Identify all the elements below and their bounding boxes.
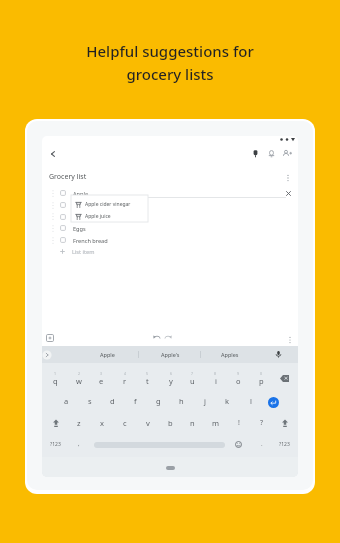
button[interactable]: Delete item <box>285 190 292 197</box>
staticText: Apple <box>73 190 89 198</box>
button[interactable]: More <box>286 336 294 344</box>
staticText: Grocery list <box>49 172 87 182</box>
button[interactable]: Enter <box>268 397 279 408</box>
button[interactable]: x <box>90 412 113 434</box>
button[interactable]: 0 <box>250 367 273 389</box>
button[interactable]: 3 <box>90 367 113 389</box>
staticText: u <box>190 376 195 386</box>
staticText: Apple cider vinegar <box>85 201 131 208</box>
button[interactable]: 7 <box>181 367 204 389</box>
button[interactable]: Apple's <box>146 346 194 363</box>
button[interactable]: Redo <box>164 334 172 342</box>
button[interactable]: Add collaborator <box>283 149 292 158</box>
staticText: q <box>53 376 58 386</box>
staticText: 6 <box>170 371 173 376</box>
staticText: a <box>64 396 69 406</box>
staticText: 8 <box>214 371 217 376</box>
button[interactable]: 6 <box>159 367 182 389</box>
button[interactable]: j <box>193 390 216 412</box>
button[interactable]: Add item <box>46 334 54 342</box>
staticText: s <box>88 396 92 406</box>
button[interactable]: 5 <box>136 367 159 389</box>
button[interactable]: z <box>67 412 90 434</box>
staticText: w <box>76 376 82 386</box>
button[interactable]: Back <box>48 149 58 159</box>
staticText: . <box>261 440 263 448</box>
staticText: b <box>168 418 173 428</box>
button[interactable]: 9 <box>227 367 250 389</box>
button[interactable]: n <box>181 412 204 434</box>
button[interactable]: Emoji <box>227 433 250 455</box>
button[interactable]: l <box>239 390 262 412</box>
button[interactable]: Shift <box>44 412 67 434</box>
staticText: 0 <box>260 371 263 376</box>
staticText: ?123 <box>50 441 61 448</box>
staticText: g <box>156 396 161 406</box>
button[interactable]: m <box>204 412 227 434</box>
button[interactable]: v <box>136 412 159 434</box>
staticText: ! <box>238 418 240 428</box>
button[interactable]: Pin <box>251 149 260 158</box>
staticText: 4 <box>124 371 127 376</box>
staticText: j <box>204 396 206 406</box>
button[interactable]: Apple juice <box>75 210 152 222</box>
button[interactable]: f <box>124 390 147 412</box>
staticText: Apples <box>221 351 239 358</box>
button[interactable]: Backspace <box>273 367 296 389</box>
button[interactable]: d <box>101 390 124 412</box>
staticText: 3 <box>100 371 103 376</box>
staticText: 2 <box>78 371 81 376</box>
staticText: List item <box>72 248 95 256</box>
staticText: h <box>179 396 184 406</box>
button[interactable]: a <box>55 390 78 412</box>
button[interactable]: , <box>67 433 90 455</box>
staticText: n <box>190 418 195 428</box>
staticText: ? <box>260 418 264 428</box>
staticText: 5 <box>146 371 149 376</box>
button[interactable]: More options <box>283 173 293 183</box>
button[interactable]: Apple <box>83 346 131 363</box>
staticText: 9 <box>237 371 240 376</box>
button[interactable]: h <box>170 390 193 412</box>
button[interactable]: Shift right <box>273 412 296 434</box>
button[interactable]: ?123 <box>44 433 67 455</box>
button[interactable]: ? <box>250 412 273 434</box>
staticText: French bread <box>73 237 108 245</box>
button[interactable]: s <box>78 390 101 412</box>
staticText: , <box>78 440 80 448</box>
staticText: z <box>77 418 81 428</box>
staticText: o <box>236 376 241 386</box>
button[interactable]: Reminder <box>267 149 276 158</box>
button[interactable]: Apple cider vinegar <box>75 198 152 210</box>
button[interactable]: g <box>147 390 170 412</box>
button[interactable]: ! <box>227 412 250 434</box>
staticText: c <box>123 418 127 428</box>
staticText: r <box>123 376 127 386</box>
button[interactable]: 8 <box>204 367 227 389</box>
button[interactable]: Expand suggestions <box>42 350 52 360</box>
staticText: Eggs <box>73 225 86 233</box>
button[interactable]: 1 <box>44 367 67 389</box>
staticText: Apple juice <box>85 213 111 220</box>
staticText: 7 <box>191 371 194 376</box>
staticText: k <box>225 396 230 406</box>
button[interactable]: 2 <box>67 367 90 389</box>
button[interactable]: Undo <box>153 334 161 342</box>
button[interactable]: c <box>113 412 136 434</box>
staticText: Helpful suggestions for <box>86 41 254 61</box>
button[interactable]: Voice input <box>274 350 283 359</box>
button[interactable]: ?123 <box>273 433 296 455</box>
staticText: m <box>212 418 220 428</box>
button[interactable]: b <box>159 412 182 434</box>
staticText: 1 <box>54 371 57 376</box>
button[interactable]: k <box>216 390 239 412</box>
staticText: ?123 <box>279 441 290 448</box>
staticText: t <box>146 376 149 386</box>
staticText: l <box>250 396 252 406</box>
button[interactable]: Apples <box>206 346 254 363</box>
staticText: Apple's <box>161 351 180 358</box>
staticText: d <box>110 396 115 406</box>
button[interactable]: 4 <box>113 367 136 389</box>
